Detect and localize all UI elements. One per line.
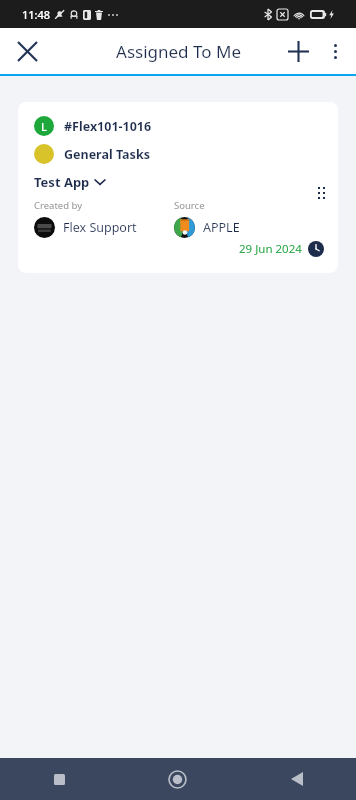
staticText: Created by bbox=[34, 199, 83, 212]
staticText: Assigned To Me bbox=[116, 40, 241, 63]
staticText: L bbox=[41, 119, 47, 134]
staticText: 29 Jun 2024 bbox=[239, 241, 302, 257]
staticText: Source bbox=[174, 199, 205, 212]
button[interactable]: Reorder bbox=[308, 180, 334, 206]
staticText: Flex Support bbox=[63, 219, 137, 236]
staticText: General Tasks bbox=[64, 146, 150, 163]
button[interactable]: More options bbox=[318, 34, 352, 68]
button[interactable]: Test App bbox=[34, 173, 105, 191]
staticText: Test App bbox=[34, 173, 90, 191]
staticText: #Flex101-1016 bbox=[64, 118, 152, 135]
staticText: APPLE bbox=[203, 219, 240, 236]
button[interactable]: Recents bbox=[0, 758, 118, 800]
button[interactable]: Close bbox=[8, 32, 46, 70]
button[interactable]: Add bbox=[278, 31, 318, 71]
button[interactable]: L bbox=[18, 102, 338, 273]
staticText: 11:48 bbox=[22, 7, 51, 22]
button[interactable]: Back bbox=[237, 758, 356, 800]
button[interactable]: Home bbox=[118, 758, 237, 800]
